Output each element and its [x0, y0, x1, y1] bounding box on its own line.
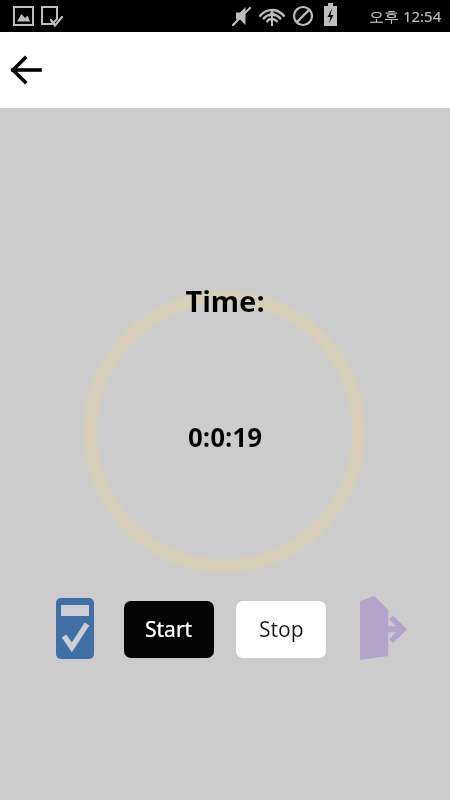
staticText: Stop [259, 615, 304, 644]
staticText: 0:0:19 [0, 419, 450, 454]
button[interactable]: Save [55, 597, 95, 660]
staticText: Time: [0, 281, 450, 320]
staticText: Start [145, 615, 193, 644]
button[interactable]: Back [4, 46, 52, 94]
button[interactable]: Stop [236, 601, 326, 658]
staticText: 오후 12:54 [369, 6, 442, 26]
button[interactable]: Export [356, 596, 408, 660]
button[interactable]: Start [124, 601, 214, 658]
